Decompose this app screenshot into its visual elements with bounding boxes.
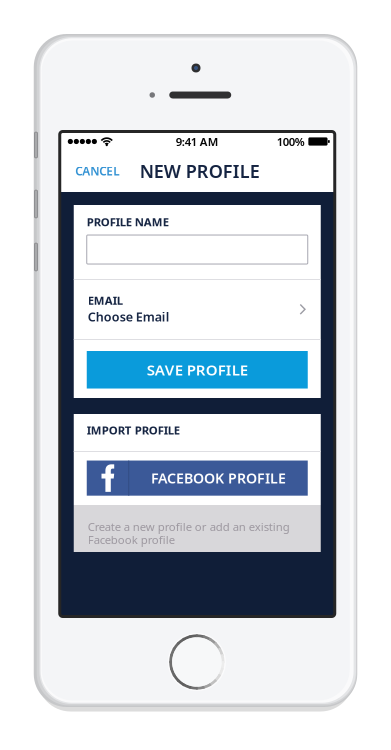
button[interactable]: SAVE PROFILE [87, 351, 308, 388]
staticText: FACEBOOK PROFILE [151, 469, 286, 487]
staticText: SAVE PROFILE [147, 360, 248, 380]
staticText: IMPORT PROFILE [87, 422, 180, 437]
button[interactable]: CANCEL [61, 150, 133, 192]
button[interactable]: FACEBOOK PROFILE [87, 460, 308, 496]
button[interactable]: EMAIL [74, 280, 321, 339]
staticText: EMAIL [88, 293, 123, 308]
staticText: PROFILE NAME [87, 214, 169, 229]
staticText: 9:41 AM [176, 134, 219, 149]
staticText: 100% [277, 134, 305, 149]
staticText: Create a new profile or add an existing [88, 519, 290, 534]
staticText: NEW PROFILE [140, 159, 260, 183]
staticText: CANCEL [75, 163, 119, 179]
staticText: Choose Email [88, 308, 170, 325]
staticText: Facebook profile [88, 532, 175, 547]
